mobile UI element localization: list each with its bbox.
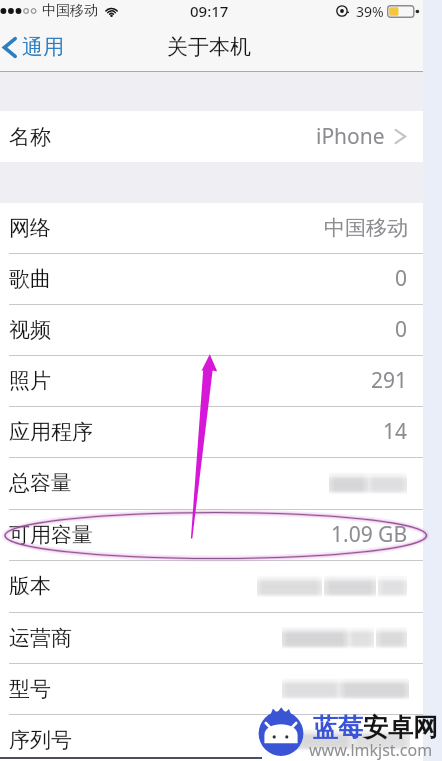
staticText: 中国移动	[324, 215, 408, 241]
staticText: 1.09 GB	[331, 520, 408, 549]
button[interactable]: 歌曲	[0, 253, 423, 304]
staticText: 视频	[9, 317, 51, 343]
button[interactable]: 名称	[0, 111, 423, 162]
other: 蓝莓安卓网	[256, 707, 306, 759]
staticText: iPhone	[316, 122, 385, 151]
button[interactable]: 版本	[0, 560, 423, 612]
staticText: 291	[371, 366, 408, 395]
button[interactable]: 总容量	[0, 457, 423, 509]
button[interactable]: 照片	[0, 355, 423, 406]
button[interactable]: 视频	[0, 304, 423, 355]
staticText: 安卓网	[363, 712, 438, 743]
button[interactable]: 可用容量	[0, 509, 423, 560]
staticText: 照片	[9, 368, 51, 394]
staticText: 可用容量	[9, 522, 93, 548]
staticText: 0	[395, 315, 408, 344]
staticText: 39%	[356, 2, 384, 21]
staticText: 09:17	[190, 1, 229, 21]
button[interactable]: 序列号	[0, 714, 423, 761]
staticText: 版本	[9, 573, 51, 599]
button[interactable]: 型号	[0, 663, 423, 714]
staticText: 蓝莓	[313, 712, 363, 743]
staticText: 运营商	[9, 625, 72, 651]
staticText: 歌曲	[9, 266, 51, 292]
staticText: 名称	[9, 124, 51, 150]
staticText: 应用程序	[9, 419, 93, 445]
staticText: www.lmkjst.com	[309, 739, 433, 761]
staticText: 0	[395, 264, 408, 293]
staticText: 关于本机	[167, 34, 251, 60]
button[interactable]: 网络	[0, 203, 423, 253]
staticText: 14	[383, 417, 408, 446]
staticText: 中国移动	[42, 2, 98, 20]
staticText: 通用	[22, 34, 64, 60]
staticText: 型号	[9, 676, 51, 702]
button[interactable]: 运营商	[0, 612, 423, 663]
button[interactable]: 通用	[0, 26, 74, 68]
button[interactable]: 应用程序	[0, 406, 423, 457]
staticText: 总容量	[9, 470, 72, 496]
staticText: 网络	[9, 215, 51, 241]
staticText: 序列号	[9, 727, 72, 753]
